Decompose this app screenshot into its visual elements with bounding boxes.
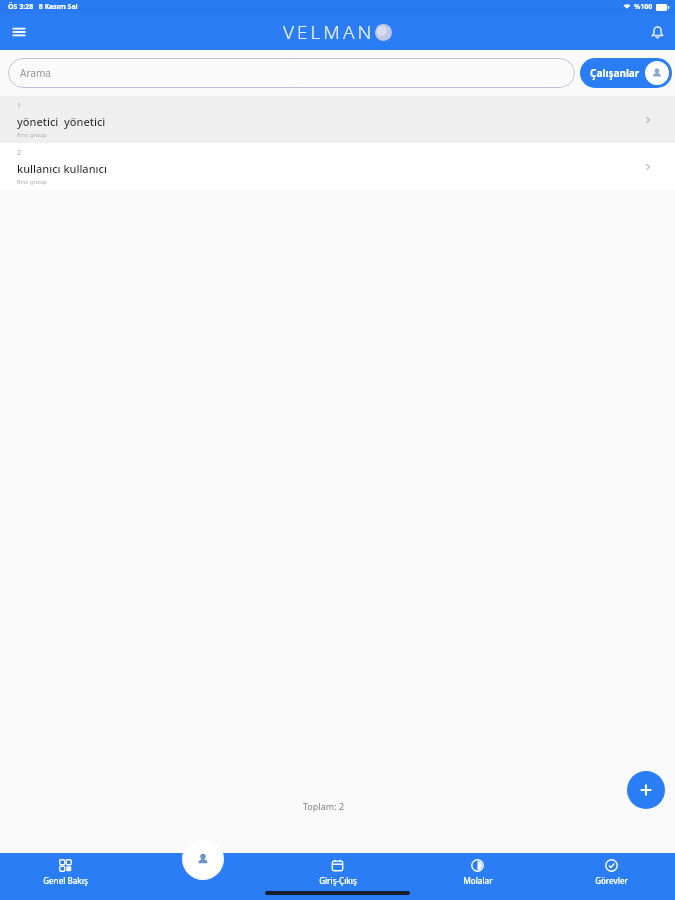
staticText: yönetici yönetici [17,114,106,129]
button[interactable]: Menu [6,19,32,45]
staticText: first group [17,178,47,186]
button[interactable]: Genel Bakış [28,857,103,888]
button[interactable]: 1 [0,96,675,143]
button[interactable]: 2 [0,143,675,190]
button[interactable]: Çalışanlar [580,58,672,88]
staticText: first group [17,131,47,139]
staticText: Görevler [595,875,628,886]
button[interactable]: Çalışanlar [184,840,222,878]
staticText: ÖS 3:28 8 Kasım Sal [8,2,78,12]
staticText: VELMAN [283,19,375,45]
button[interactable]: Giriş-Çıkış [300,857,375,888]
staticText: Giriş-Çıkış [319,875,357,886]
button[interactable]: Notifications [643,18,671,46]
staticText: Genel Bakış [43,875,88,886]
button[interactable]: Molalar [440,857,515,888]
staticText: Arama [20,66,51,80]
button[interactable]: Arama [8,58,575,88]
button[interactable]: Görevler [574,857,649,888]
staticText: 2 [17,148,22,158]
staticText: %100 [634,2,653,12]
staticText: Çalışanlar [590,66,640,80]
staticText: kullanıcı kullanıcı [17,161,107,176]
button[interactable]: Add [627,771,665,809]
staticText: Toplam: 2 [303,800,345,812]
staticText: Molalar [463,875,493,886]
staticText: 1 [17,101,22,111]
